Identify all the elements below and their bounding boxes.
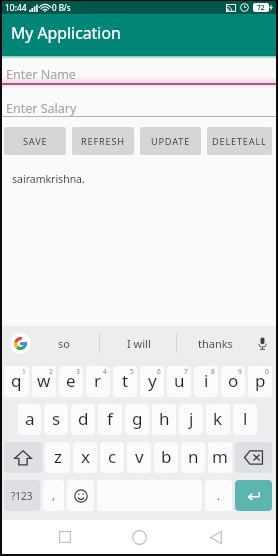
button[interactable]: t — [113, 366, 137, 397]
staticText: m — [212, 445, 228, 468]
button[interactable]: Home — [113, 520, 166, 554]
staticText: d — [78, 407, 89, 430]
button[interactable]: . — [205, 480, 232, 511]
staticText: 9 — [238, 367, 242, 376]
staticText: Enter Salary — [6, 100, 77, 117]
button[interactable]: l — [233, 404, 257, 435]
staticText: v — [135, 445, 144, 468]
button[interactable]: , — [43, 480, 64, 511]
staticText: s — [52, 407, 61, 430]
staticText: 10:44 — [5, 2, 27, 14]
button[interactable]: w — [32, 366, 56, 397]
staticText: g — [132, 407, 143, 430]
button[interactable]: REFRESH — [72, 127, 134, 155]
button[interactable]: I will — [101, 326, 177, 360]
button[interactable]: Backspace — [235, 442, 272, 473]
staticText: 5 — [130, 367, 134, 376]
staticText: r — [94, 369, 102, 392]
button[interactable]: k — [206, 404, 230, 435]
staticText: My Application — [11, 22, 121, 44]
button[interactable]: d — [71, 404, 95, 435]
staticText: a — [25, 407, 35, 430]
button[interactable]: p — [248, 366, 272, 397]
button[interactable]: o — [221, 366, 245, 397]
staticText: c — [108, 445, 117, 468]
button[interactable]: Enter — [235, 480, 272, 511]
staticText: DELETEALL — [212, 135, 267, 148]
staticText: h — [159, 407, 170, 430]
staticText: n — [188, 445, 199, 468]
button[interactable]: s — [44, 404, 68, 435]
staticText: 7 — [184, 367, 188, 376]
staticText: y — [148, 369, 157, 392]
button[interactable]: Recents — [38, 520, 91, 554]
button[interactable]: h — [152, 404, 176, 435]
button[interactable]: v — [127, 442, 151, 473]
button[interactable]: x — [73, 442, 97, 473]
staticText: 2 — [49, 367, 53, 376]
staticText: sairamkrishna. — [12, 172, 85, 186]
staticText: 4 — [103, 367, 107, 376]
button[interactable]: so — [26, 326, 101, 360]
staticText: Enter Name — [6, 66, 76, 83]
staticText: w — [37, 369, 51, 392]
staticText: b — [161, 445, 172, 468]
button[interactable]: j — [179, 404, 203, 435]
staticText: REFRESH — [81, 135, 125, 148]
button[interactable]: Google — [6, 326, 35, 360]
staticText: 8 — [211, 367, 215, 376]
button[interactable]: q — [4, 366, 29, 397]
staticText: 6 — [157, 367, 161, 376]
staticText: 72 — [257, 3, 265, 12]
button[interactable]: UPDATE — [140, 127, 201, 155]
staticText: 3 — [76, 367, 80, 376]
staticText: x — [81, 445, 90, 468]
staticText: . — [217, 488, 220, 503]
staticText: so — [58, 336, 70, 351]
button[interactable]: DELETEALL — [207, 127, 272, 155]
staticText: ?123 — [11, 489, 33, 503]
button[interactable]: r — [86, 366, 110, 397]
staticText: 0 B/s — [52, 2, 71, 13]
button[interactable]: Voice input — [250, 326, 274, 360]
staticText: thanks — [198, 336, 233, 351]
button[interactable]: b — [154, 442, 178, 473]
button[interactable]: Shift — [4, 442, 42, 473]
button[interactable]: SAVE — [4, 127, 66, 155]
button[interactable]: y — [140, 366, 164, 397]
staticText: e — [66, 369, 76, 392]
button[interactable]: n — [181, 442, 205, 473]
button[interactable]: c — [100, 442, 124, 473]
button[interactable]: Emoji — [67, 480, 94, 511]
staticText: o — [228, 369, 239, 392]
staticText: j — [189, 407, 194, 430]
staticText: u — [174, 369, 185, 392]
staticText: UPDATE — [151, 135, 191, 148]
staticText: 0 — [265, 367, 269, 376]
button[interactable]: f — [98, 404, 122, 435]
button[interactable]: u — [167, 366, 191, 397]
button[interactable]: a — [18, 404, 41, 435]
button[interactable]: thanks — [178, 326, 252, 360]
staticText: 1 — [22, 367, 26, 376]
button[interactable]: Back — [189, 520, 242, 554]
staticText: k — [213, 407, 223, 430]
staticText: f — [107, 407, 113, 430]
staticText: p — [255, 369, 266, 392]
staticText: i — [204, 369, 209, 392]
staticText: SAVE — [23, 135, 48, 148]
staticText: , — [52, 488, 55, 503]
button[interactable]: z — [45, 442, 70, 473]
staticText: q — [11, 369, 22, 392]
staticText: I will — [127, 336, 151, 351]
staticText: t — [122, 369, 129, 392]
button[interactable]: m — [208, 442, 232, 473]
button[interactable]: ?123 — [4, 480, 40, 511]
staticText: l — [243, 407, 248, 430]
staticText: z — [54, 445, 62, 468]
button[interactable]: g — [125, 404, 149, 435]
button[interactable]: i — [194, 366, 218, 397]
button[interactable]: e — [59, 366, 83, 397]
